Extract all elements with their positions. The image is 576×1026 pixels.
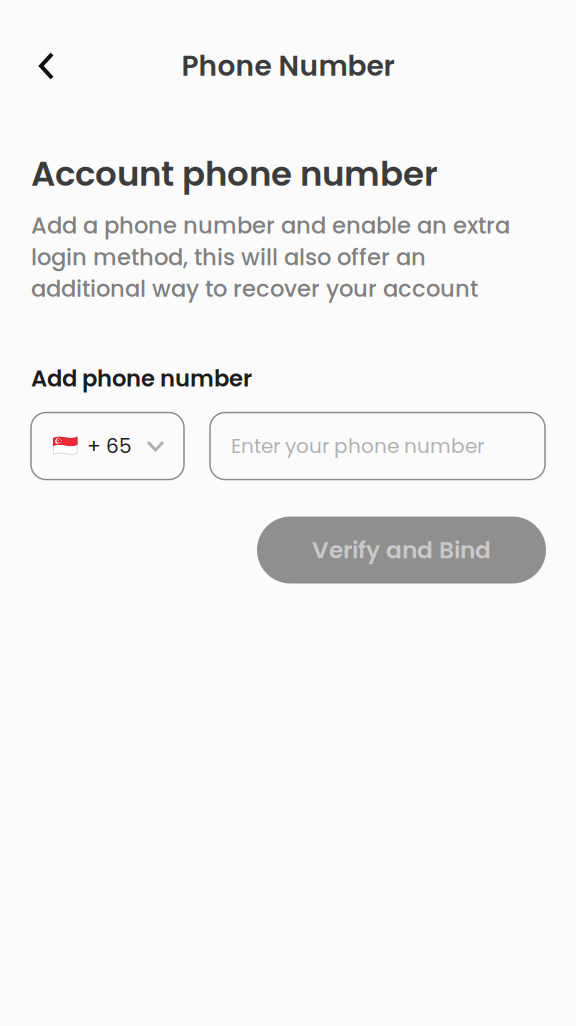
- button[interactable]: Back: [24, 37, 69, 95]
- button[interactable]: Enter your phone number: [210, 412, 545, 479]
- button[interactable]: 🇸🇬: [31, 412, 184, 479]
- staticText: 🇸🇬: [52, 433, 79, 458]
- staticText: Add a phone number and enable an extra l…: [31, 210, 510, 305]
- staticText: Verify and Bind: [312, 534, 491, 566]
- staticText: Account phone number: [31, 150, 438, 198]
- staticText: Enter your phone number: [231, 432, 484, 460]
- button[interactable]: Verify and Bind: [257, 516, 546, 583]
- staticText: Add phone number: [31, 363, 252, 394]
- staticText: Phone Number: [181, 46, 394, 86]
- staticText: + 65: [87, 432, 132, 460]
